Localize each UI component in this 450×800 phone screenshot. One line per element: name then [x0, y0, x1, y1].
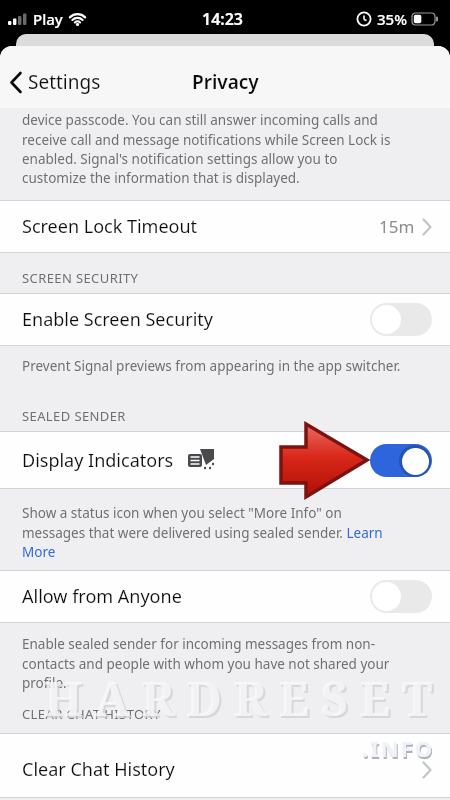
- staticText: Display Indicators: [22, 448, 174, 473]
- button[interactable]: [370, 303, 432, 336]
- staticText: SEALED SENDER: [22, 407, 126, 425]
- staticText: HARDRESET: [46, 668, 446, 732]
- staticText: .INFO: [362, 733, 435, 763]
- staticText: 15m: [379, 215, 415, 238]
- staticText: Settings: [28, 69, 101, 95]
- staticText: 14:23: [202, 8, 244, 30]
- staticText: 35%: [377, 9, 407, 29]
- staticText: Allow from Anyone: [22, 584, 182, 609]
- button[interactable]: Allow from Anyone: [0, 571, 450, 622]
- button[interactable]: Display Indicators: [0, 432, 450, 488]
- staticText: Enable sealed sender for incoming messag…: [22, 635, 390, 692]
- staticText: Privacy: [192, 69, 259, 95]
- button[interactable]: [370, 580, 432, 613]
- staticText: Screen Lock Timeout: [22, 214, 198, 239]
- staticText: Clear Chat History: [22, 757, 175, 782]
- staticText: .INFO: [363, 735, 436, 765]
- button[interactable]: Screen Lock Timeout: [0, 201, 450, 252]
- staticText: Enable Screen Security: [22, 307, 214, 332]
- button[interactable]: Settings: [10, 69, 101, 95]
- staticText: HARDRESET: [44, 666, 444, 730]
- staticText: CLEAR CHAT HISTORY: [22, 705, 161, 723]
- staticText: SCREEN SECURITY: [22, 269, 139, 287]
- staticText: Prevent Signal previews from appearing i…: [22, 357, 401, 375]
- button[interactable]: Clear Chat History: [0, 734, 450, 797]
- button[interactable]: [370, 444, 432, 477]
- button[interactable]: Enable Screen Security: [0, 294, 450, 345]
- staticText: Play: [33, 9, 63, 29]
- staticText: device passcode. You can still answer in…: [22, 111, 391, 187]
- staticText: Show a status icon when you select "More…: [22, 504, 383, 561]
